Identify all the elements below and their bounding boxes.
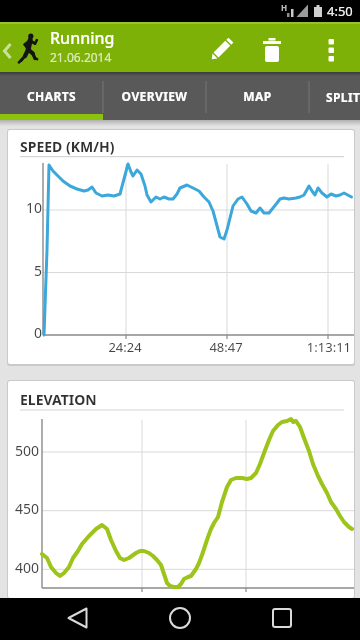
staticText: Running: [50, 27, 115, 49]
staticText: 21.06.2014: [50, 49, 112, 65]
staticText: 10: [18, 198, 42, 217]
button[interactable]: [250, 22, 296, 72]
button[interactable]: SPLIT: [309, 72, 360, 120]
staticText: SPLIT: [326, 89, 360, 105]
staticText: OVERVIEW: [103, 88, 206, 104]
staticText: H: [281, 2, 288, 13]
button[interactable]: [120, 598, 240, 640]
staticText: 400: [10, 558, 39, 577]
staticText: 500: [10, 441, 39, 460]
staticText: 0: [18, 323, 42, 342]
button[interactable]: [310, 22, 360, 72]
staticText: MAP: [206, 88, 309, 104]
staticText: 5: [18, 261, 42, 280]
button[interactable]: [0, 598, 120, 640]
button[interactable]: [240, 598, 360, 640]
staticText: 24:24: [95, 338, 155, 356]
staticText: ELEVATION: [20, 390, 97, 409]
button[interactable]: [199, 22, 245, 72]
button[interactable]: CHARTS: [0, 72, 103, 120]
staticText: CHARTS: [0, 88, 103, 104]
button[interactable]: Running: [50, 27, 115, 65]
button[interactable]: OVERVIEW: [103, 72, 206, 120]
staticText: 450: [10, 499, 39, 518]
staticText: 4:50: [327, 2, 353, 20]
staticText: SPEED (KM/H): [20, 137, 115, 156]
button[interactable]: MAP: [206, 72, 309, 120]
staticText: 1:13:11: [291, 338, 351, 356]
staticText: 48:47: [196, 338, 256, 356]
